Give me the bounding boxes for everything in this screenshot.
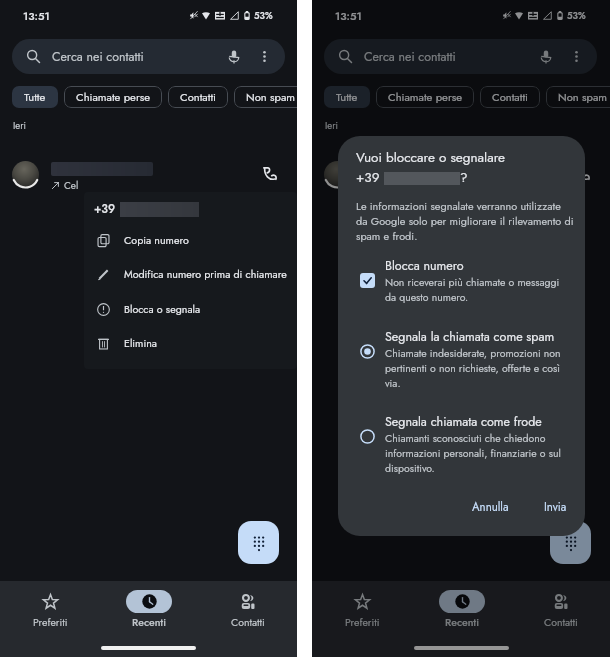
staticText: Elimina [124, 336, 157, 351]
staticText: Chiamate perse [76, 89, 150, 105]
button[interactable]: Non spam [546, 86, 610, 108]
button[interactable]: Contatti [168, 86, 228, 108]
staticText: Contatti [492, 89, 528, 105]
staticText: Non spam [246, 89, 296, 105]
staticText: Recenti [132, 615, 166, 630]
staticText: ? [460, 168, 468, 188]
staticText: Invia [544, 499, 567, 516]
button[interactable]: Segnala la chiamata come spam [338, 328, 585, 391]
staticText: Vuoi bloccare o segnalare [356, 148, 506, 168]
button[interactable]: Chiama [570, 161, 596, 187]
button[interactable]: Invia [536, 494, 575, 521]
staticText: 53% [254, 9, 273, 22]
button[interactable]: Cel [0, 152, 297, 196]
staticText: 13:51 [335, 8, 362, 24]
staticText: Cel [64, 178, 79, 192]
button[interactable]: Modifica numero prima di chiamare [84, 258, 297, 291]
staticText: Chiamate indesiderate, promozioni non pe… [385, 346, 569, 391]
staticText: Segnala la chiamata come spam [385, 328, 555, 346]
staticText: Annulla [472, 499, 509, 516]
staticText: Non riceverai più chiamate o messaggi da… [385, 275, 569, 305]
button[interactable]: Preferiti [15, 590, 85, 630]
staticText: Cel [376, 178, 391, 192]
staticText: Contatti [544, 615, 578, 630]
staticText: 13:51 [23, 8, 50, 24]
staticText: +39 [356, 168, 384, 188]
button[interactable]: Contatti [213, 590, 283, 630]
staticText: Tutte [24, 89, 46, 105]
staticText: Ieri [325, 119, 338, 133]
staticText: Segnala chiamata come frode [385, 413, 542, 431]
button[interactable]: Annulla [464, 494, 517, 521]
button[interactable]: Recenti [114, 590, 184, 630]
staticText: Recenti [445, 615, 479, 630]
button[interactable]: Cerca nei contatti [12, 39, 285, 74]
staticText: Chiamanti sconosciuti che chiedono infor… [385, 431, 569, 476]
button[interactable]: Blocca o segnala [84, 293, 297, 326]
button[interactable]: Cerca nei contatti [324, 39, 597, 74]
button[interactable]: Chiamate perse [376, 86, 474, 108]
staticText: Blocca o segnala [124, 302, 201, 317]
staticText: Le informazioni segnalate verranno utili… [356, 198, 574, 244]
button[interactable]: Non spam [234, 86, 308, 108]
button[interactable]: Tutte [12, 86, 58, 108]
staticText: Chiamate perse [388, 89, 462, 105]
staticText: Blocca numero [385, 257, 464, 275]
button[interactable]: Preferiti [327, 590, 397, 630]
button[interactable]: Chiama [257, 161, 283, 187]
staticText: Modifica numero prima di chiamare [124, 267, 287, 282]
button[interactable]: Segnala chiamata come frode [338, 413, 585, 476]
button[interactable]: Tastierino [550, 521, 591, 564]
staticText: +39 [94, 201, 116, 217]
button[interactable]: Copia numero [84, 224, 297, 257]
button[interactable]: Blocca numero [338, 257, 585, 305]
staticText: Contatti [231, 615, 265, 630]
staticText: Tutte [336, 89, 358, 105]
staticText: Cerca nei contatti [52, 48, 227, 66]
staticText: 53% [567, 9, 586, 22]
button[interactable]: Tastierino [238, 521, 279, 564]
button[interactable]: Contatti [526, 590, 596, 630]
staticText: Preferiti [345, 615, 380, 630]
button[interactable]: Chiamate perse [64, 86, 162, 108]
staticText: Ieri [13, 119, 26, 133]
staticText: Cerca nei contatti [364, 48, 539, 66]
button[interactable]: Cel [312, 152, 610, 196]
staticText: Copia numero [124, 233, 189, 248]
button[interactable]: Recenti [427, 590, 497, 630]
staticText: Preferiti [33, 615, 68, 630]
staticText: Non spam [558, 89, 608, 105]
button[interactable]: Contatti [480, 86, 540, 108]
button[interactable]: Elimina [84, 327, 297, 360]
staticText: Contatti [180, 89, 216, 105]
button[interactable]: Tutte [324, 86, 370, 108]
